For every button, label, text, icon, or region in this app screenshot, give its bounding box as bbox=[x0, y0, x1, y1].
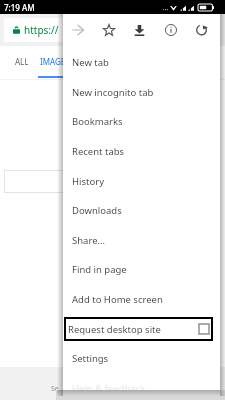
button[interactable]: Share… bbox=[63, 228, 220, 252]
staticText: Recent tabs bbox=[72, 145, 125, 158]
staticText: Settings bbox=[72, 352, 109, 365]
staticText: Downloads bbox=[72, 204, 122, 217]
staticText: Request desktop site bbox=[68, 323, 161, 336]
staticText: IMAGES bbox=[40, 56, 70, 67]
staticText: Share… bbox=[72, 234, 106, 247]
staticText: New tab bbox=[72, 56, 109, 69]
button[interactable]: Reload bbox=[186, 17, 217, 43]
button[interactable]: Bookmark bbox=[93, 17, 124, 43]
staticText: 7:19 AM bbox=[4, 2, 35, 13]
button[interactable]: Find in page bbox=[63, 257, 220, 281]
staticText: History bbox=[72, 175, 104, 188]
button[interactable]: Download bbox=[124, 17, 155, 43]
staticText: Find in page bbox=[72, 263, 127, 276]
button[interactable]: New incognito tab bbox=[63, 80, 220, 104]
staticText: New incognito tab bbox=[72, 86, 154, 99]
staticText: https:// bbox=[24, 23, 59, 37]
staticText: Add to Home screen bbox=[72, 293, 163, 306]
button[interactable]: https:// bbox=[4, 18, 66, 42]
button[interactable]: Request desktop site bbox=[63, 317, 220, 341]
button[interactable]: Settings bbox=[63, 346, 220, 370]
button[interactable]: Recent tabs bbox=[63, 139, 220, 163]
button[interactable]: Page info bbox=[155, 17, 186, 43]
button[interactable]: Bookmarks bbox=[63, 109, 220, 133]
button[interactable]: Downloads bbox=[63, 198, 220, 222]
button[interactable]: Add to Home screen bbox=[63, 287, 220, 311]
staticText: Bookmarks bbox=[72, 115, 123, 128]
button[interactable]: Help & feedback bbox=[63, 376, 220, 390]
button[interactable]: Forward bbox=[63, 17, 93, 43]
button[interactable]: New tab bbox=[63, 50, 220, 74]
staticText: ALL bbox=[15, 56, 29, 67]
button[interactable]: History bbox=[63, 169, 220, 193]
staticText: Help & feedback bbox=[72, 382, 146, 390]
staticText: Se bbox=[51, 384, 59, 394]
